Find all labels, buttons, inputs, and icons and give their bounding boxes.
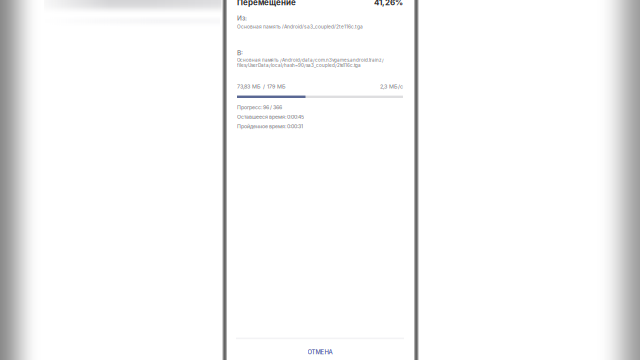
staticText: ОТМЕНА [307, 348, 332, 356]
staticText: Пройденное время: 0:00:31 [237, 123, 303, 130]
staticText: 2,3 МБ/с [380, 83, 403, 90]
staticText: Прогресс: 96 / 366 [237, 104, 282, 111]
staticText: 41,26% [374, 0, 403, 7]
button[interactable]: ОТМЕНА [225, 342, 414, 360]
staticText: Перемещение [237, 0, 296, 7]
staticText: Основная память /Android/data/com.n3vgam… [237, 57, 384, 68]
staticText: 73,83 МБ / 179 МБ [237, 83, 286, 90]
staticText: Основная память /Android/sa3_coupled/2te… [237, 24, 363, 29]
staticText: Из: [237, 14, 247, 22]
staticText: Оставшееся время: 0:00:45 [237, 114, 304, 120]
staticText: В: [237, 49, 243, 57]
